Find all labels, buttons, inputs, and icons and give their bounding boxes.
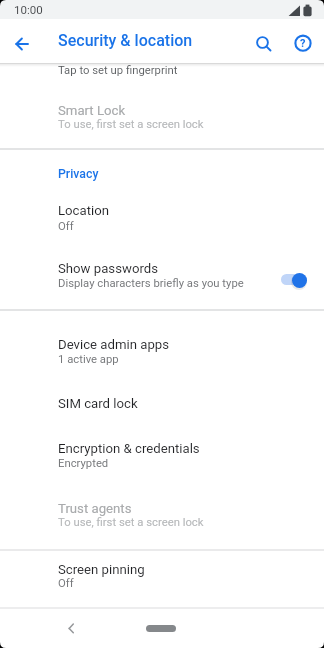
staticText: Location [58, 203, 110, 218]
staticText: SIM card lock [58, 396, 138, 411]
staticText: Encrypted [58, 457, 109, 470]
button[interactable] [0, 195, 324, 252]
staticText: 10:00 [14, 3, 43, 16]
button[interactable] [281, 274, 307, 285]
staticText: To use, first set a screen lock [58, 118, 204, 131]
button[interactable] [56, 614, 84, 642]
staticText: Screen pinning [58, 562, 145, 577]
button[interactable] [247, 27, 279, 59]
staticText: Off [58, 577, 74, 590]
staticText: Device admin apps [58, 337, 170, 352]
button[interactable] [0, 371, 324, 421]
staticText: To use, first set a screen lock [58, 516, 204, 529]
staticText: Off [58, 220, 74, 233]
staticText: Smart Lock [58, 103, 126, 118]
button[interactable] [0, 64, 324, 95]
button[interactable] [146, 625, 176, 632]
staticText: Encryption & credentials [58, 441, 200, 456]
staticText: 1 active app [58, 353, 119, 366]
button[interactable] [6, 28, 38, 60]
staticText: Show passwords [58, 261, 159, 276]
staticText: Privacy [58, 167, 99, 181]
button[interactable] [0, 311, 324, 371]
staticText: Trust agents [58, 501, 132, 516]
button[interactable] [0, 481, 324, 543]
button[interactable] [0, 252, 324, 309]
button[interactable] [0, 551, 324, 607]
button[interactable] [0, 95, 324, 148]
staticText: Tap to set up fingerprint [58, 64, 178, 77]
button[interactable]: ? [287, 27, 319, 59]
staticText: ? [300, 37, 306, 50]
staticText: Display characters briefly as you type [58, 277, 244, 290]
button[interactable] [0, 421, 324, 481]
staticText: Security & location [58, 31, 193, 50]
